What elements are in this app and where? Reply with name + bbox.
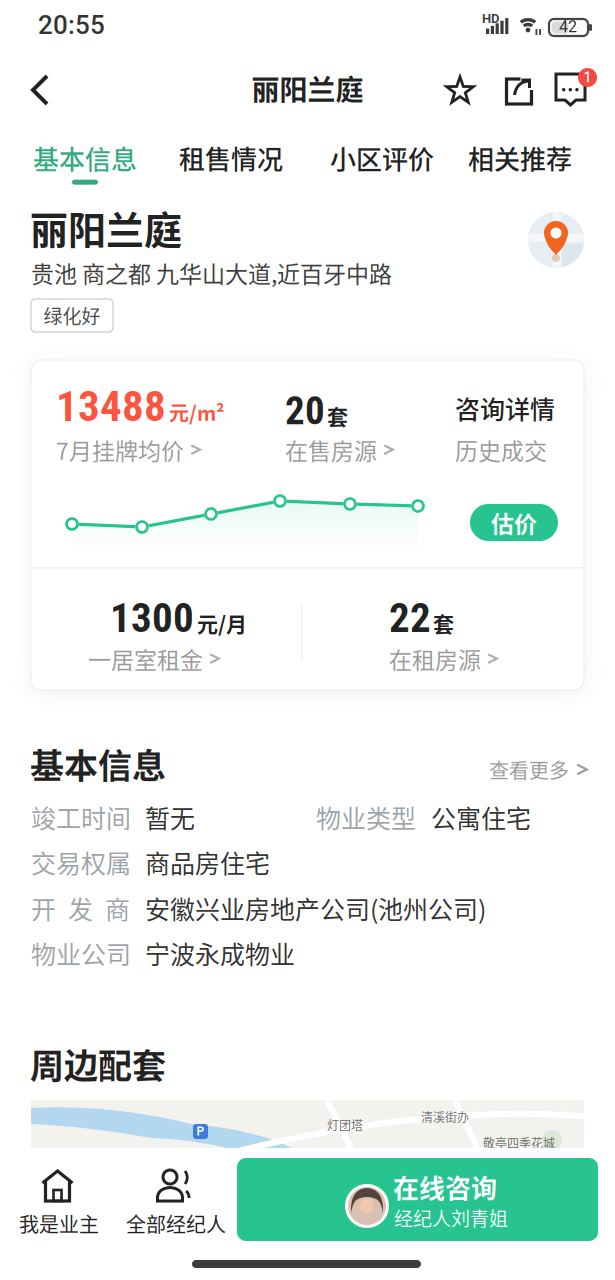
staticText: 经纪人刘青姐 [394,1204,508,1231]
staticText: 物业公司 [31,935,131,971]
staticText: 7月挂牌均价 [56,433,184,466]
staticText: 暂无 [145,799,195,835]
button[interactable]: 在线咨询 [237,1158,598,1241]
staticText: 绿化好 [43,302,100,329]
staticText: HD [482,11,499,26]
staticText: 22 [389,594,431,642]
button[interactable]: 20 [285,360,455,475]
staticText: 20 [285,388,325,434]
staticText: 开 [31,890,56,926]
staticText: 交易权属 [31,844,131,880]
staticText: P [196,1124,204,1139]
staticText: 咨询详情 [455,390,555,426]
button[interactable]: 小区评价 [0,0,434,177]
staticText: 估价 [491,506,537,539]
staticText: 元/月 [197,608,247,638]
staticText: 商品房住宅 [145,844,270,880]
staticText: 套 [433,608,454,638]
staticText: 套 [327,400,348,431]
staticText: 20:55 [38,10,105,40]
button[interactable]: 全部经纪人 [126,1148,251,1248]
button[interactable]: Back [0,0,62,116]
button[interactable]: 查看更多 [0,0,589,784]
button[interactable]: 13488 [31,360,260,475]
staticText: 物业类型 [316,799,416,835]
staticText: 全部经纪人 [126,1209,226,1238]
staticText: 竣工时间 [31,799,131,835]
staticText: 42 [559,17,577,36]
staticText: 查看更多 [489,755,569,784]
staticText: 敬亭四季花城 [483,1134,555,1151]
button[interactable]: 租售情况 [0,0,283,177]
staticText: 1300 [110,594,194,642]
button[interactable]: 基本信息 [33,139,137,185]
staticText: 1 [583,69,591,86]
staticText: 租售情况 [179,139,283,177]
staticText: 周边配套 [30,1039,166,1088]
staticText: 13488 [56,381,166,431]
staticText: 发 [68,890,93,926]
staticText: 一居室租金 [88,642,203,675]
staticText: 商 [105,890,130,926]
staticText: 丽阳兰庭 [30,200,182,255]
button[interactable]: Map [0,0,584,268]
button[interactable]: 咨询详情 [455,360,565,475]
button[interactable]: 估价 [470,504,558,541]
staticText: 丽阳兰庭 [251,68,363,108]
staticText: 基本信息 [30,739,166,788]
staticText: 宁波永成物业 [145,935,295,971]
staticText: 元/m² [169,397,224,426]
staticText: 安徽兴业房地产公司(池州公司) [145,890,486,926]
staticText: 公寓住宅 [431,799,531,835]
button[interactable]: 周边配套地图 [31,1100,584,1160]
button[interactable]: Share [0,0,539,115]
button[interactable]: 相关推荐 [0,0,572,177]
staticText: 历史成交 [455,433,547,466]
staticText: 我是业主 [19,1209,99,1238]
button[interactable]: Favorite [0,0,481,115]
staticText: 贵池 商之都 九华山大道,近百牙中路 [31,256,392,289]
staticText: 在线咨询 [393,1168,497,1206]
staticText: 基本信息 [33,139,137,177]
button[interactable]: 1300 [88,589,301,681]
staticText: 灯团塔 [327,1116,363,1133]
button[interactable]: Messages [0,0,599,112]
staticText: 清溪街办 [421,1108,469,1125]
staticText: 小区评价 [330,139,434,177]
button[interactable]: 22 [389,589,549,681]
staticText: 在租房源 [389,642,481,675]
button[interactable]: 我是业主 [19,1148,129,1248]
staticText: 在售房源 [285,433,377,466]
staticText: 相关推荐 [468,139,572,177]
